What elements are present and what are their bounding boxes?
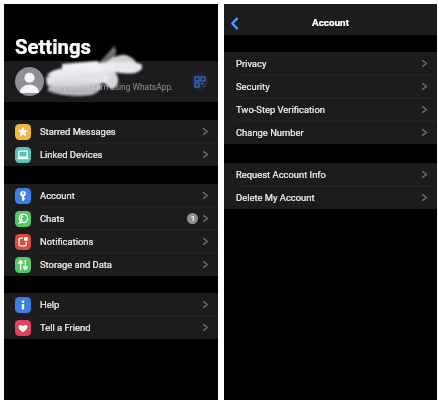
staticText: Hey there! I am using WhatsApp.	[52, 82, 174, 92]
button[interactable]: Storage and Data	[4, 253, 218, 276]
staticText: Request Account Info	[236, 169, 326, 180]
staticText: Two-Step Verification	[236, 104, 325, 115]
staticText: Storage and Data	[40, 259, 112, 270]
staticText: Change Number	[236, 127, 304, 138]
button[interactable]: Request Account Info	[224, 163, 437, 186]
staticText: Tell a Friend	[40, 322, 91, 333]
staticText: Notifications	[40, 236, 94, 247]
staticText: Account	[312, 17, 349, 29]
staticText: Linked Devices	[40, 149, 103, 160]
staticText: Settings	[15, 35, 91, 59]
button[interactable]: Account	[4, 184, 218, 207]
button[interactable]: Security	[224, 75, 437, 98]
button[interactable]: Change Number	[224, 121, 437, 144]
button[interactable]: Chats	[4, 207, 218, 230]
staticText: 1	[191, 215, 195, 223]
staticText: Starred Messages	[40, 126, 116, 137]
button[interactable]: Starred Messages	[4, 120, 218, 143]
staticText: Security	[236, 81, 270, 92]
button[interactable]: Hey there! I am using WhatsApp.	[4, 61, 218, 102]
staticText: Account	[40, 190, 75, 201]
staticText: Chats	[40, 213, 65, 224]
button[interactable]: Help	[4, 293, 218, 316]
staticText: Privacy	[236, 58, 267, 69]
button[interactable]: Tell a Friend	[4, 316, 218, 339]
button[interactable]: My QR code	[191, 73, 208, 90]
button[interactable]: Linked Devices	[4, 143, 218, 166]
staticText: Help	[40, 299, 60, 310]
button[interactable]: Notifications	[4, 230, 218, 253]
button[interactable]: Delete My Account	[224, 186, 437, 209]
button[interactable]: Two-Step Verification	[224, 98, 437, 121]
button[interactable]: Back	[224, 13, 244, 33]
button[interactable]: Privacy	[224, 52, 437, 75]
staticText: Delete My Account	[236, 192, 315, 203]
